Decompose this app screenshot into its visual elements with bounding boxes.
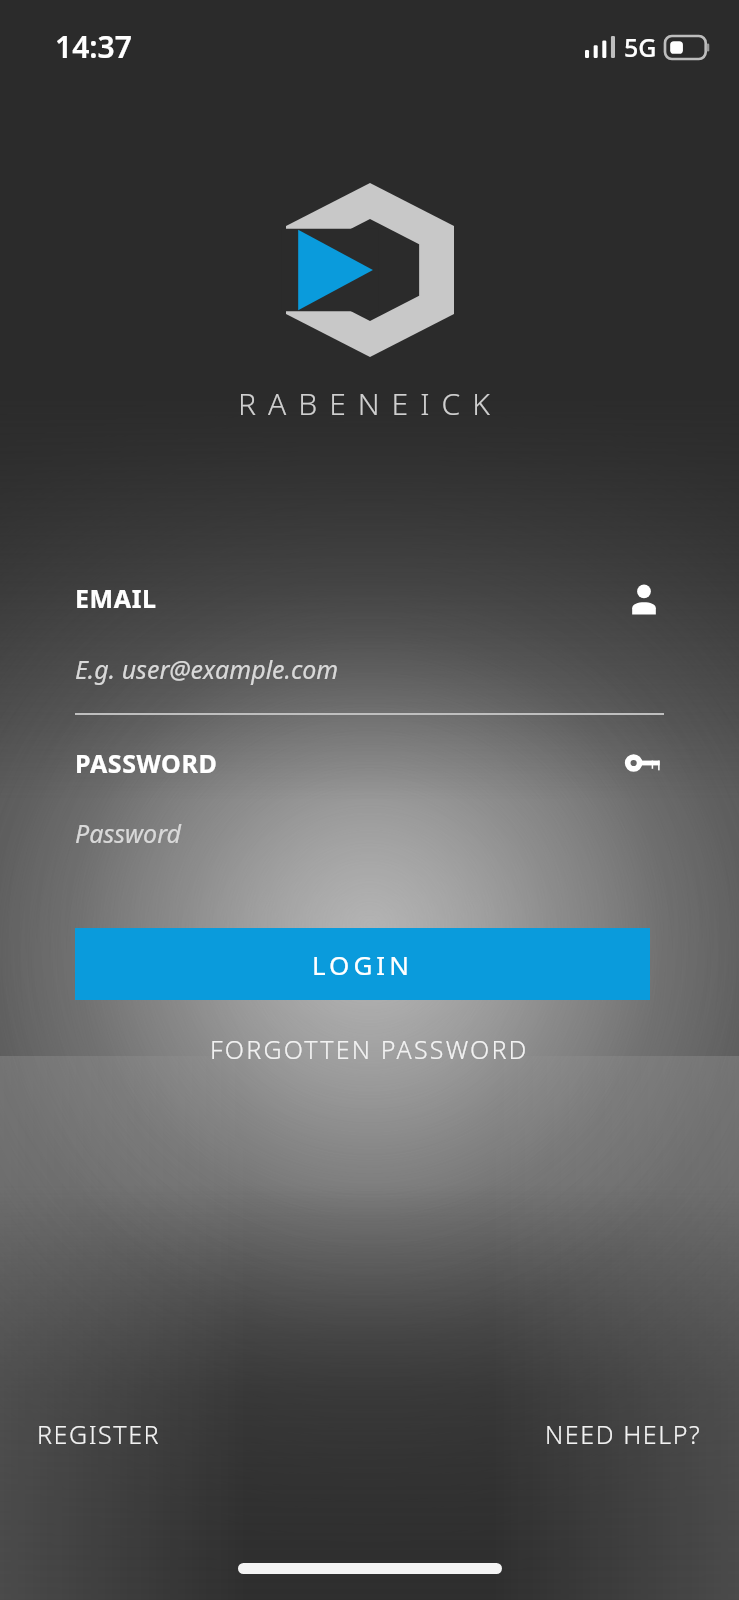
staticText: 14:37 (55, 26, 132, 67)
staticText: Password (75, 816, 182, 850)
staticText: PASSWORD (75, 746, 218, 780)
staticText: FORGOTTEN PASSWORD (210, 1032, 529, 1066)
button[interactable]: FORGOTTEN PASSWORD (210, 1032, 529, 1066)
button[interactable]: Email account (624, 578, 664, 618)
staticText: RABENEICK (238, 383, 502, 424)
staticText: REGISTER (37, 1417, 161, 1451)
staticText: EMAIL (75, 581, 157, 615)
staticText: LOGIN (312, 947, 413, 982)
button[interactable]: NEED HELP? (545, 1417, 702, 1451)
staticText: E.g. user@example.com (75, 652, 339, 686)
button[interactable]: LOGIN (75, 928, 650, 1000)
button[interactable]: REGISTER (37, 1417, 161, 1451)
staticText: 5G (624, 30, 657, 64)
button[interactable]: Password (75, 813, 664, 853)
staticText: NEED HELP? (545, 1417, 702, 1451)
button[interactable]: Show password (624, 743, 664, 783)
button[interactable]: E.g. user@example.com (75, 648, 664, 690)
